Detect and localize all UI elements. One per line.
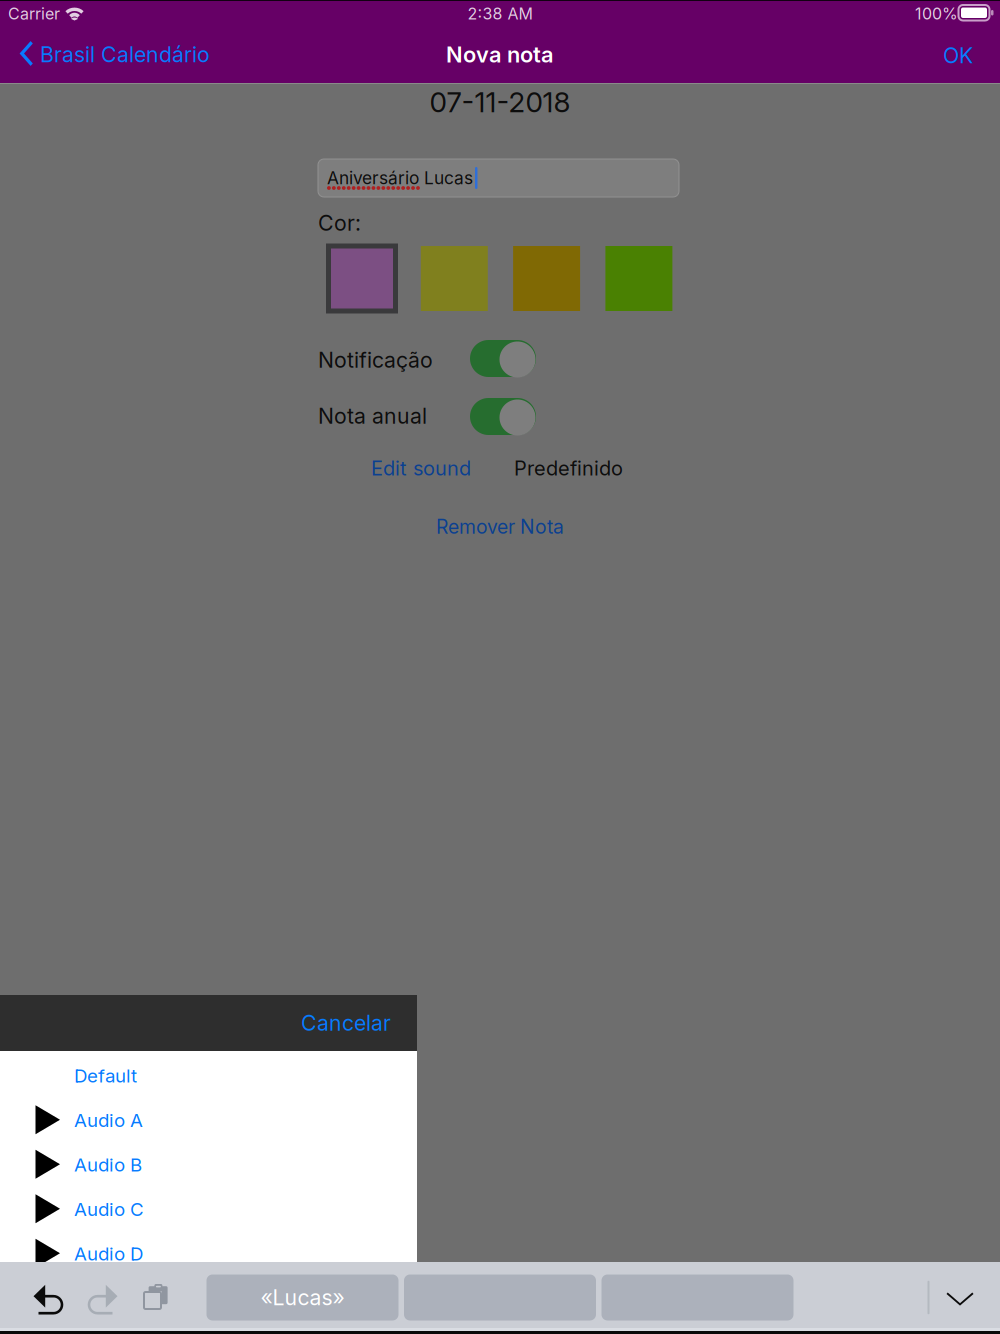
button[interactable]: Suggestion 3 [601,1274,793,1320]
staticText: Carrier [8,4,60,23]
button[interactable]: Remover Nota [0,509,1000,544]
staticText: Remover Nota [436,515,564,538]
staticText: Cancelar [301,1010,391,1036]
button[interactable]: Audio A [0,1095,417,1140]
staticText: Audio B [74,1153,142,1176]
button[interactable]: «Lucas» [206,1274,398,1320]
button[interactable] [328,246,395,311]
button[interactable]: Default [0,1051,417,1095]
staticText: Notificação [318,347,433,373]
staticText: OK [943,43,973,68]
button[interactable]: Audio C [0,1184,417,1229]
staticText: Nova nota [446,41,554,68]
staticText: Edit sound [371,456,471,480]
staticText: Predefinido [514,456,623,480]
button[interactable] [605,246,672,311]
button[interactable]: OK [921,32,1000,83]
button[interactable]: Undo [33,1280,63,1316]
staticText: Brasil Calendário [40,42,210,67]
staticText: 100% [915,4,958,23]
button[interactable]: Brasil Calendário [0,32,220,83]
staticText: Nota anual [318,403,427,429]
staticText: Default [74,1064,137,1087]
staticText: Audio D [74,1242,143,1265]
button[interactable]: Edit sound [371,452,471,484]
staticText: 2:38 AM [467,4,532,23]
button[interactable]: Paste [143,1284,169,1310]
staticText: Aniversário Lucas [327,167,473,188]
staticText: Audio A [74,1109,143,1132]
staticText: Audio C [74,1198,144,1221]
staticText: Cor: [318,210,361,236]
staticText: 07-11-2018 [429,85,570,119]
button[interactable]: Redo [88,1280,118,1316]
button[interactable]: Audio D [0,1229,417,1273]
button[interactable]: Cancelar [287,995,417,1051]
button[interactable]: Hide keyboard [946,1292,973,1306]
staticText: «Lucas» [260,1285,344,1310]
button[interactable]: Audio B [0,1140,417,1184]
